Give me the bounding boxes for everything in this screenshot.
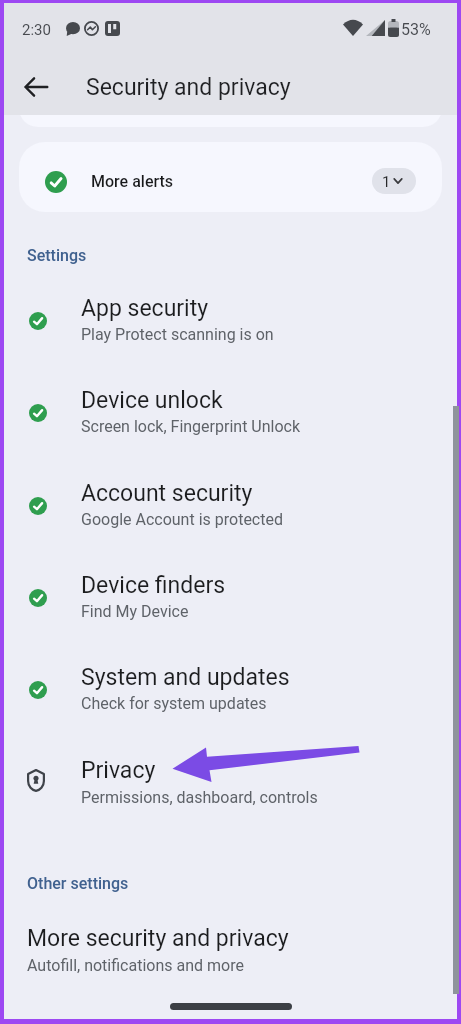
staticText: 53% [401,20,431,39]
staticText: System and updates [81,664,290,691]
button[interactable] [0,644,461,736]
button[interactable] [0,275,461,367]
button[interactable] [0,905,461,995]
button[interactable]: 1 [372,168,416,194]
staticText: More security and privacy [27,925,289,952]
button[interactable]: More alerts [19,142,442,212]
staticText: App security [81,295,209,322]
staticText: Google Account is protected [81,510,283,529]
staticText: 1 [382,173,391,191]
staticText: 2:30 [22,21,51,39]
staticText: Account security [81,480,253,507]
staticText: Screen lock, Fingerprint Unlock [81,417,301,436]
staticText: Security and privacy [86,74,291,101]
button[interactable] [0,736,461,828]
staticText: Other settings [27,874,129,893]
button[interactable] [0,367,461,459]
staticText: Find My Device [81,602,189,621]
staticText: Autofill, notifications and more [27,956,244,975]
button[interactable] [14,67,58,107]
staticText: Privacy [81,757,156,784]
staticText: More alerts [91,172,174,191]
staticText: Play Protect scanning is on [81,325,274,344]
staticText: Device finders [81,572,226,599]
button[interactable] [0,552,461,644]
staticText: Permissions, dashboard, controls [81,788,318,807]
staticText: Check for system updates [81,694,267,713]
staticText: Settings [27,246,87,265]
staticText: Device unlock [81,387,223,414]
button[interactable] [0,460,461,552]
